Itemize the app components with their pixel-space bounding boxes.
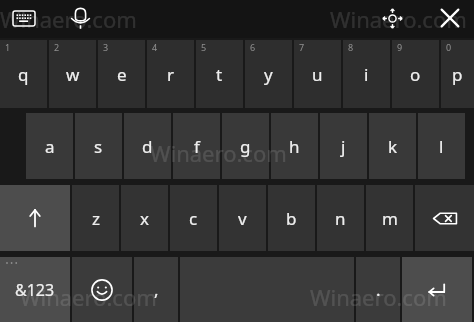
- button[interactable]: l: [418, 113, 465, 179]
- staticText: Winaero.com: [20, 282, 157, 312]
- button[interactable]: 6: [245, 40, 292, 108]
- staticText: 9: [397, 41, 403, 53]
- button[interactable]: 4: [147, 40, 194, 108]
- staticText: 6: [250, 41, 256, 53]
- staticText: v: [238, 207, 247, 230]
- staticText: r: [167, 63, 175, 86]
- staticText: i: [364, 63, 369, 86]
- button[interactable]: Voice input: [68, 5, 92, 31]
- button[interactable]: 5: [196, 40, 243, 108]
- staticText: w: [66, 63, 80, 86]
- staticText: Winaero.com: [310, 282, 447, 312]
- staticText: h: [289, 135, 300, 158]
- button[interactable]: m: [366, 185, 413, 251]
- button[interactable]: j: [320, 113, 367, 179]
- button[interactable]: Move keyboard: [380, 6, 404, 30]
- staticText: Winaero.com: [0, 4, 137, 34]
- staticText: 8: [348, 41, 354, 53]
- button[interactable]: Symbols: [0, 257, 70, 322]
- staticText: k: [388, 135, 398, 158]
- staticText: x: [140, 207, 149, 230]
- button[interactable]: c: [170, 185, 217, 251]
- button[interactable]: d: [124, 113, 171, 179]
- button[interactable]: 3: [98, 40, 145, 108]
- staticText: ,: [154, 278, 159, 301]
- button[interactable]: x: [121, 185, 168, 251]
- staticText: c: [189, 207, 198, 230]
- staticText: 7: [299, 41, 305, 53]
- button[interactable]: Emoji: [72, 257, 132, 322]
- button[interactable]: s: [75, 113, 122, 179]
- button[interactable]: v: [219, 185, 266, 251]
- staticText: 4: [152, 41, 158, 53]
- button[interactable]: Space: [180, 257, 354, 322]
- button[interactable]: b: [268, 185, 315, 251]
- staticText: 3: [103, 41, 109, 53]
- button[interactable]: n: [317, 185, 364, 251]
- staticText: b: [286, 207, 297, 230]
- staticText: 2: [54, 41, 60, 53]
- staticText: o: [410, 63, 421, 86]
- button[interactable]: h: [271, 113, 318, 179]
- staticText: j: [341, 135, 346, 158]
- button[interactable]: 7: [294, 40, 341, 108]
- button[interactable]: Close keyboard: [437, 5, 463, 31]
- staticText: g: [240, 135, 251, 158]
- staticText: m: [382, 207, 398, 230]
- staticText: p: [452, 63, 463, 86]
- staticText: 1: [5, 41, 11, 53]
- button[interactable]: .: [356, 257, 400, 322]
- staticText: 5: [201, 41, 207, 53]
- button[interactable]: ,: [134, 257, 178, 322]
- button[interactable]: Backspace: [415, 185, 474, 251]
- button[interactable]: 0: [441, 40, 474, 108]
- staticText: e: [117, 63, 127, 86]
- staticText: a: [45, 135, 55, 158]
- staticText: d: [142, 135, 153, 158]
- staticText: n: [335, 207, 346, 230]
- staticText: t: [216, 63, 223, 86]
- button[interactable]: z: [72, 185, 119, 251]
- staticText: l: [439, 135, 444, 158]
- button[interactable]: 8: [343, 40, 390, 108]
- staticText: s: [94, 135, 103, 158]
- staticText: Winaero.com: [330, 4, 467, 34]
- button[interactable]: f: [173, 113, 220, 179]
- button[interactable]: Keyboard layout: [12, 8, 36, 28]
- staticText: y: [264, 63, 273, 86]
- button[interactable]: 1: [0, 40, 47, 108]
- button[interactable]: 2: [49, 40, 96, 108]
- staticText: .: [376, 278, 381, 301]
- button[interactable]: 9: [392, 40, 439, 108]
- staticText: 0: [446, 41, 452, 53]
- staticText: u: [312, 63, 323, 86]
- staticText: f: [194, 135, 200, 158]
- staticText: Winaero.com: [150, 138, 287, 168]
- button[interactable]: g: [222, 113, 269, 179]
- button[interactable]: k: [369, 113, 416, 179]
- staticText: z: [92, 207, 100, 230]
- staticText: q: [18, 63, 29, 86]
- button[interactable]: Enter: [402, 257, 472, 322]
- button[interactable]: Shift: [0, 185, 70, 251]
- button[interactable]: a: [26, 113, 73, 179]
- staticText: &123: [15, 279, 55, 301]
